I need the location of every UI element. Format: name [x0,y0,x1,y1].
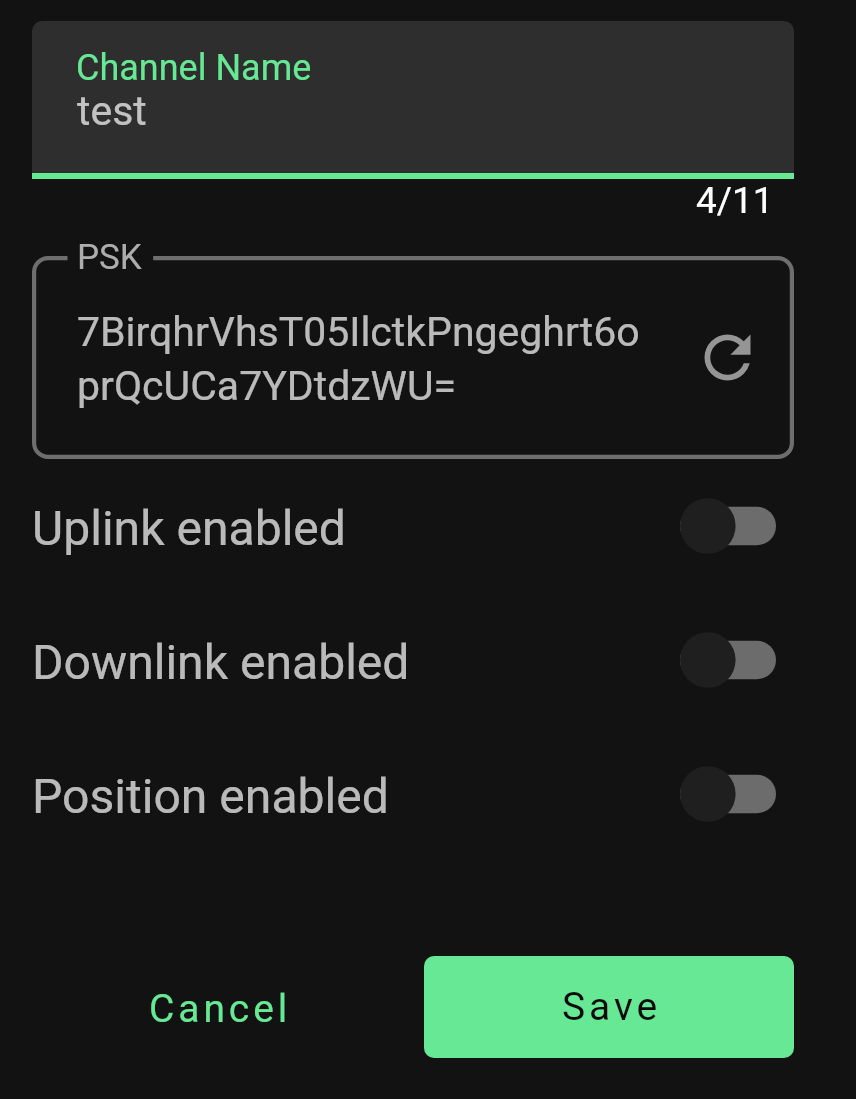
button[interactable]: Channel Name [32,21,794,179]
staticText: Downlink enabled [32,634,410,690]
button[interactable]: Uplink enabled [0,459,856,593]
staticText: 7BirqhrVhsT05IlctkPngeghrt6o prQcUCa7YDt… [77,308,640,410]
staticText: Save [562,984,662,1030]
staticText: Channel Name [76,47,312,89]
button[interactable]: PSK [32,256,794,459]
button[interactable]: Position enabled toggle, off [676,760,780,828]
button[interactable]: Position enabled [0,727,856,861]
staticText: Cancel [149,986,292,1032]
button[interactable]: Generate new pre-shared key [691,321,763,393]
staticText: Position enabled [32,768,389,824]
button[interactable]: Save [424,956,794,1058]
button[interactable]: Uplink enabled toggle, off [676,492,780,560]
button[interactable]: Downlink enabled toggle, off [676,626,780,694]
staticText: Uplink enabled [32,500,346,556]
staticText: PSK [77,237,142,278]
staticText: test [77,87,147,135]
staticText: 4/11 [696,179,774,222]
button[interactable]: Downlink enabled [0,593,856,727]
button[interactable]: Cancel [116,956,318,1056]
